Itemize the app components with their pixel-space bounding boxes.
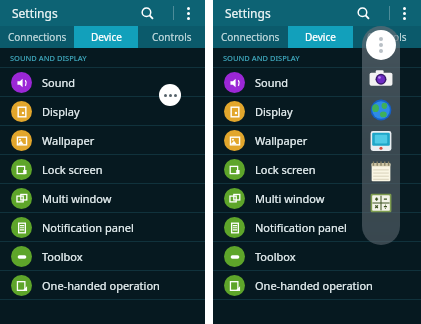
button[interactable]: Toolbox <box>213 242 421 271</box>
staticText: Notification panel <box>255 220 347 235</box>
button[interactable]: App <box>368 128 394 154</box>
button[interactable]: Memo <box>368 159 394 185</box>
button[interactable]: More options <box>177 2 199 24</box>
button[interactable]: One-handed operation <box>213 271 421 300</box>
staticText: Settings <box>12 5 58 21</box>
staticText: Settings <box>225 5 271 21</box>
button[interactable]: Internet <box>368 97 394 123</box>
staticText: One-handed operation <box>42 278 160 293</box>
button[interactable]: Controls <box>138 26 205 48</box>
button[interactable]: Search <box>135 1 159 25</box>
staticText: Notification panel <box>42 220 134 235</box>
button[interactable]: Wallpaper <box>213 126 421 155</box>
staticText: One-handed operation <box>255 278 373 293</box>
button[interactable]: Lock screen <box>0 155 205 184</box>
button[interactable]: Display <box>0 97 205 126</box>
button[interactable]: More options <box>393 2 415 24</box>
button[interactable]: One-handed operation <box>0 271 205 300</box>
button[interactable]: Sound <box>0 68 205 97</box>
staticText: Controls <box>367 30 407 44</box>
button[interactable]: Wallpaper <box>0 126 205 155</box>
button[interactable]: Search <box>351 1 375 25</box>
button[interactable]: Device <box>74 26 138 48</box>
button[interactable]: Device <box>288 26 353 48</box>
button[interactable]: Camera <box>368 66 394 92</box>
button[interactable]: Toolbox <box>0 242 205 271</box>
staticText: Device <box>305 30 336 44</box>
button[interactable]: Connections <box>213 26 288 48</box>
staticText: Connections <box>221 30 280 44</box>
staticText: Lock screen <box>42 162 103 177</box>
button[interactable]: Toolbox menu <box>366 30 396 60</box>
staticText: Sound <box>255 75 289 90</box>
staticText: Sound <box>42 75 76 90</box>
staticText: Device <box>91 30 122 44</box>
staticText: Multi window <box>42 191 112 206</box>
staticText: Controls <box>152 30 192 44</box>
staticText: Toolbox <box>42 249 83 264</box>
staticText: SOUND AND DISPLAY <box>10 53 87 63</box>
button[interactable]: Toolbox tray <box>362 26 400 245</box>
button[interactable]: Notification panel <box>213 213 421 242</box>
staticText: Wallpaper <box>255 133 308 148</box>
button[interactable]: Multi window <box>0 184 205 213</box>
staticText: Display <box>42 104 80 119</box>
button[interactable]: More options <box>159 84 181 106</box>
button[interactable]: Connections <box>0 26 74 48</box>
button[interactable]: Calculator <box>368 190 394 216</box>
staticText: Wallpaper <box>42 133 95 148</box>
button[interactable]: Display <box>213 97 421 126</box>
staticText: Toolbox <box>255 249 296 264</box>
button[interactable]: Lock screen <box>213 155 421 184</box>
staticText: SOUND AND DISPLAY <box>223 53 300 63</box>
staticText: Connections <box>8 30 67 44</box>
button[interactable]: Multi window <box>213 184 421 213</box>
button[interactable]: Notification panel <box>0 213 205 242</box>
staticText: Multi window <box>255 191 325 206</box>
staticText: Lock screen <box>255 162 316 177</box>
staticText: Display <box>255 104 293 119</box>
button[interactable]: Controls <box>353 26 421 48</box>
button[interactable]: Sound <box>213 68 421 97</box>
